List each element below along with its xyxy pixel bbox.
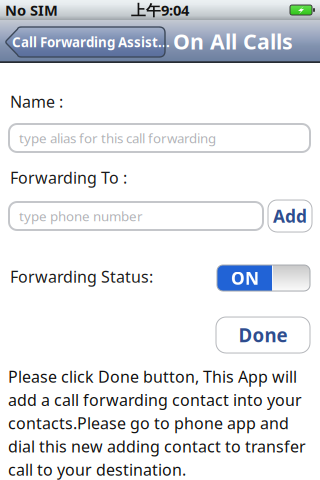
staticText: Name : [10, 91, 63, 112]
staticText: No SIM [5, 0, 58, 20]
staticText: Forwarding To : [10, 167, 127, 188]
staticText: Done [238, 323, 287, 347]
staticText: type alias for this call forwarding [19, 129, 216, 147]
staticText: Forwarding Status: [10, 266, 153, 287]
staticText: 上午9:04 [131, 0, 189, 20]
staticText: type phone number [19, 207, 143, 225]
button[interactable]: Add [268, 200, 312, 232]
staticText: Please click Done button, This App will … [8, 366, 306, 480]
staticText: Add [273, 204, 307, 227]
button[interactable]: Done [216, 317, 310, 353]
button[interactable]: Call Forwarding Assist... [5, 27, 165, 57]
button[interactable]: Forwarding status, on [217, 265, 310, 291]
staticText: On All Calls [173, 27, 293, 55]
staticText: Call Forwarding Assist... [12, 33, 170, 51]
staticText: ON [231, 266, 259, 289]
